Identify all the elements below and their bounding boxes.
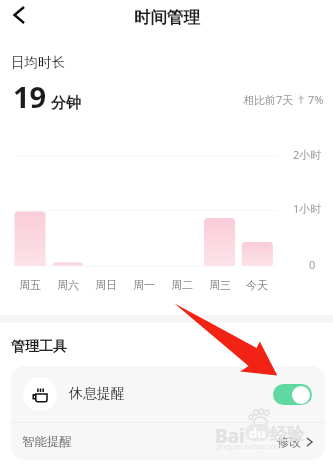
staticText: 经验: [270, 424, 304, 445]
button[interactable]: 休息提醒: [11, 366, 325, 422]
staticText: 相比前7天: [243, 92, 294, 107]
staticText: 19: [13, 77, 47, 116]
staticText: du: [249, 424, 266, 441]
staticText: 周六: [48, 278, 88, 292]
staticText: Bai: [215, 423, 245, 449]
button[interactable]: Break reminder toggle: [273, 384, 312, 405]
staticText: 分钟: [51, 94, 81, 113]
staticText: 周五: [10, 278, 50, 292]
staticText: 今天: [237, 278, 277, 292]
staticText: 周三: [200, 278, 240, 292]
staticText: 休息提醒: [69, 385, 125, 403]
staticText: 修改: [277, 434, 301, 449]
staticText: 周二: [162, 278, 202, 292]
staticText: 时间管理: [134, 7, 200, 28]
staticText: 日均时长: [11, 54, 65, 71]
staticText: 7%: [308, 92, 324, 107]
staticText: 周一: [124, 278, 164, 292]
staticText: 智能提醒: [22, 434, 72, 450]
staticText: 2小时: [293, 147, 322, 162]
staticText: 管理工具: [11, 338, 67, 356]
button[interactable]: Back: [2, 0, 36, 30]
staticText: 0: [309, 257, 316, 272]
button[interactable]: 智能提醒: [11, 423, 325, 460]
staticText: jingyan.baidu.com: [217, 441, 282, 451]
staticText: 1小时: [293, 201, 322, 216]
staticText: 周日: [86, 278, 126, 292]
